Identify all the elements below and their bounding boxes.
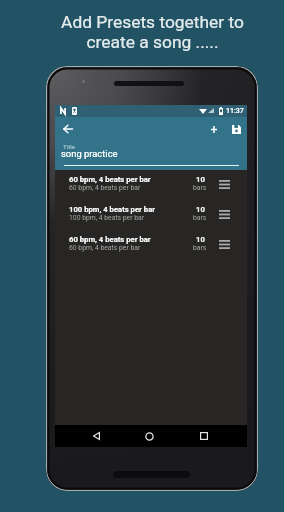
staticText: 60 bpm, 4 beats per bar [69, 175, 151, 184]
staticText: bars [193, 214, 207, 222]
button[interactable]: 60 bpm, 4 beats per bar [55, 170, 247, 200]
button[interactable]: Title [55, 141, 247, 170]
button[interactable]: Reorder preset [218, 238, 230, 250]
button[interactable]: Save [225, 117, 247, 141]
staticText: bars [193, 184, 207, 192]
staticText: 60 bpm, 4 beats per bar [69, 184, 141, 192]
button[interactable]: Recent apps [187, 425, 221, 447]
button[interactable]: Add preset [203, 117, 225, 141]
button[interactable]: Reorder preset [218, 208, 230, 220]
button[interactable]: 100 bpm, 4 beats per bar [55, 200, 247, 230]
button[interactable]: Home [132, 425, 166, 447]
staticText: 100 bpm, 4 beats per bar [69, 214, 145, 222]
staticText: 10 [196, 235, 205, 244]
button[interactable]: Reorder preset [218, 178, 230, 190]
staticText: 11:37 [226, 107, 244, 115]
staticText: 10 [196, 175, 205, 184]
staticText: 60 bpm, 4 beats per bar [69, 244, 141, 252]
staticText: Add Presets together to [61, 12, 244, 32]
staticText: song practice [61, 148, 118, 159]
staticText: 10 [196, 205, 205, 214]
staticText: create a song ..... [86, 32, 219, 52]
staticText: 60 bpm, 4 beats per bar [69, 235, 151, 244]
button[interactable]: 60 bpm, 4 beats per bar [55, 230, 247, 260]
staticText: bars [193, 244, 207, 252]
button[interactable]: Back [79, 425, 113, 447]
staticText: Title [63, 143, 76, 150]
staticText: 100 bpm, 4 beats per bar [69, 205, 156, 214]
button[interactable]: Navigate up [57, 117, 79, 141]
